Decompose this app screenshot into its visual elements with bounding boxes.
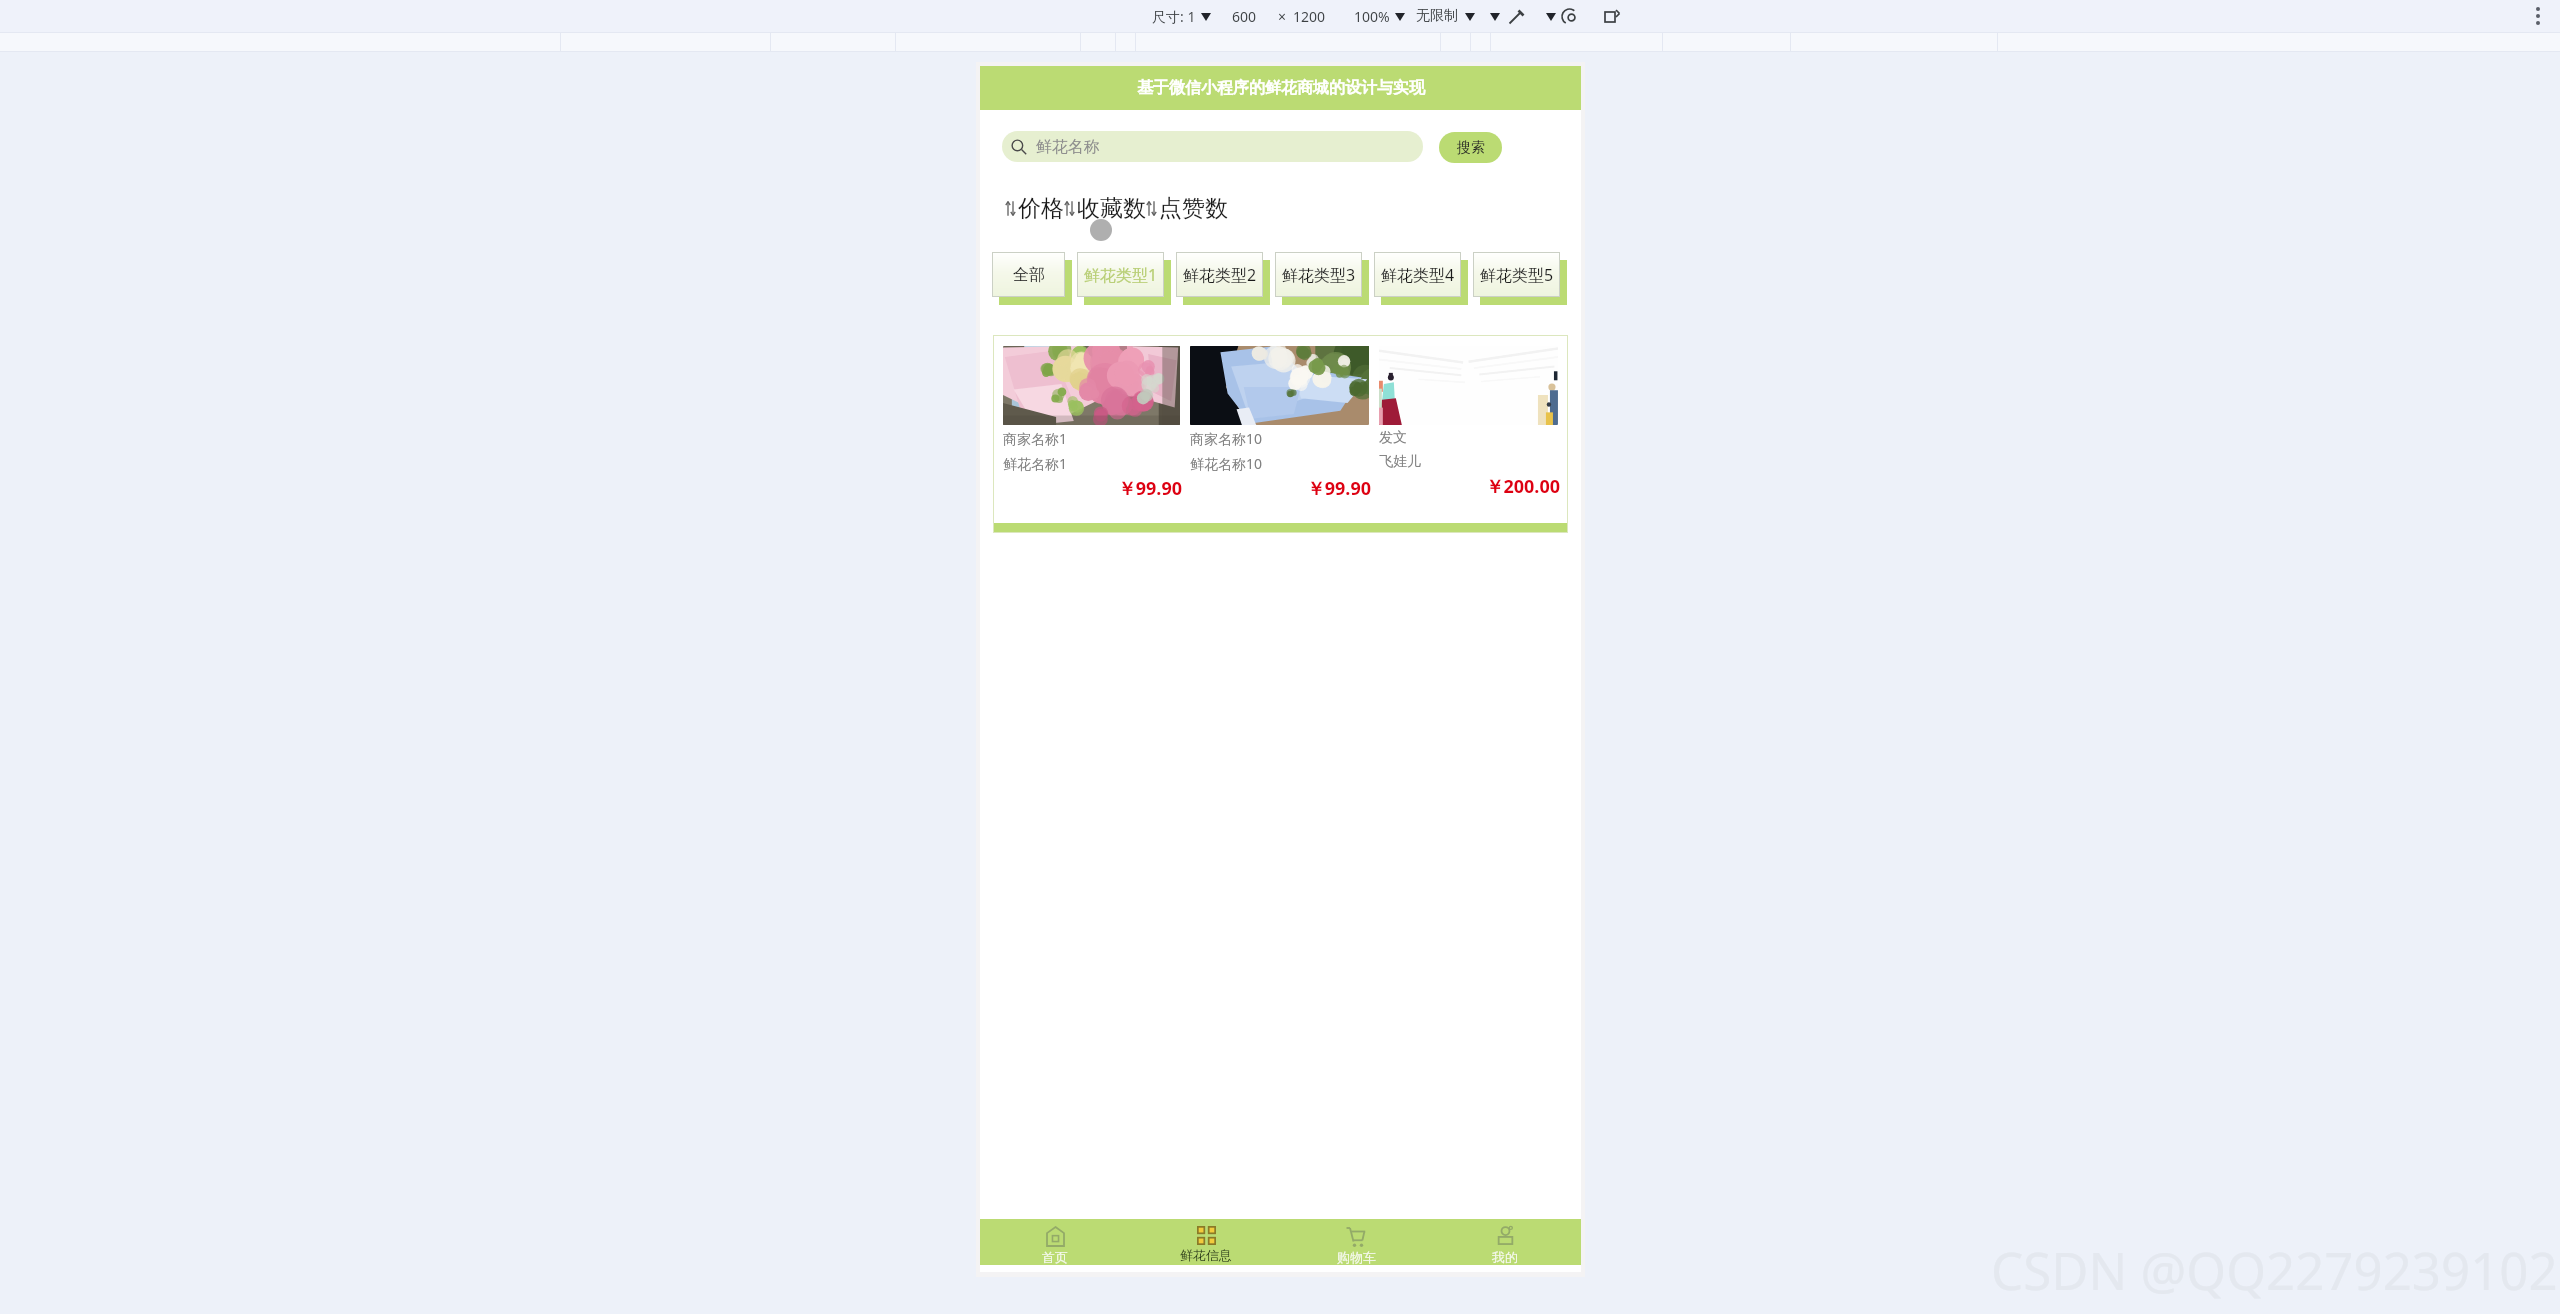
button[interactable]: 发文 <box>1379 346 1558 499</box>
staticText: 600 <box>1232 7 1257 26</box>
button[interactable]: 鲜花类型1 <box>1077 252 1164 297</box>
staticText: CSDN @QQ2279239102 <box>1991 1235 2558 1304</box>
staticText: 鲜花信息 <box>1180 1247 1232 1263</box>
button[interactable]: 鲜花类型4 <box>1374 252 1461 297</box>
button[interactable]: 全部 <box>992 252 1065 297</box>
button[interactable]: 点赞数 <box>1146 194 1228 223</box>
button[interactable]: 收藏数 <box>1064 194 1146 223</box>
button[interactable]: 鲜花名称 <box>1002 131 1423 162</box>
staticText: ￥200.00 <box>1381 474 1560 499</box>
button[interactable]: Colour options <box>1486 6 1504 26</box>
button[interactable]: 首页 <box>1015 1226 1095 1265</box>
staticText: 收藏数 <box>1077 194 1146 223</box>
staticText: 无限制 <box>1416 7 1458 25</box>
button[interactable]: Screenshot <box>1604 8 1621 25</box>
button[interactable]: 搜索 <box>1439 132 1502 163</box>
staticText: 基于微信小程序的鲜花商城的设计与实现 <box>1137 78 1425 98</box>
button[interactable]: 鲜花类型5 <box>1473 252 1560 297</box>
staticText: 1200 <box>1293 7 1326 26</box>
button[interactable]: More options <box>2536 7 2540 25</box>
staticText: 鲜花名称10 <box>1190 454 1263 473</box>
staticText: 首页 <box>1042 1249 1068 1265</box>
button[interactable]: 鲜花类型2 <box>1176 252 1263 297</box>
button[interactable]: 商家名称10 <box>1190 346 1369 501</box>
staticText: 鲜花名称1 <box>1003 454 1068 473</box>
button[interactable]: 基于微信小程序的鲜花商城的设计与实现 <box>980 66 1581 110</box>
staticText: 搜索 <box>1457 139 1485 157</box>
staticText: 鲜花名称 <box>1036 137 1100 157</box>
staticText: 鲜花类型4 <box>1381 264 1455 286</box>
button[interactable] <box>1412 0 1478 32</box>
button[interactable]: 我的 <box>1465 1226 1545 1265</box>
staticText: ￥99.90 <box>1005 476 1182 501</box>
staticText: 商家名称10 <box>1190 429 1263 448</box>
staticText: × <box>1278 7 1287 26</box>
staticText: ￥99.90 <box>1192 476 1371 501</box>
button[interactable]: Color picker <box>1508 8 1525 25</box>
button[interactable]: 商家名称1 <box>1003 346 1180 501</box>
button[interactable]: 鲜花信息 <box>1166 1226 1246 1263</box>
staticText: 鲜花类型2 <box>1183 264 1257 286</box>
button[interactable]: Preview options <box>1542 6 1560 26</box>
staticText: 点赞数 <box>1159 194 1228 223</box>
button[interactable]: 鲜花类型3 <box>1275 252 1362 297</box>
button[interactable] <box>1148 0 1215 32</box>
button[interactable]: 购物车 <box>1316 1226 1396 1265</box>
staticText: 100% <box>1354 7 1390 26</box>
staticText: 我的 <box>1492 1249 1518 1265</box>
staticText: 鲜花类型3 <box>1282 264 1356 286</box>
staticText: 飞娃儿 <box>1379 453 1421 471</box>
button[interactable]: Preview <box>1561 8 1578 25</box>
button[interactable] <box>1226 0 1326 32</box>
button[interactable] <box>1350 0 1408 32</box>
staticText: 发文 <box>1379 429 1407 447</box>
staticText: 尺寸: 1 <box>1152 7 1196 26</box>
staticText: 鲜花类型1 <box>1084 264 1158 286</box>
button[interactable]: 价格 <box>1005 194 1064 223</box>
staticText: 购物车 <box>1337 1249 1376 1265</box>
staticText: 全部 <box>1013 265 1045 285</box>
staticText: 商家名称1 <box>1003 429 1068 448</box>
staticText: 鲜花类型5 <box>1480 264 1554 286</box>
staticText: 价格 <box>1018 194 1064 223</box>
